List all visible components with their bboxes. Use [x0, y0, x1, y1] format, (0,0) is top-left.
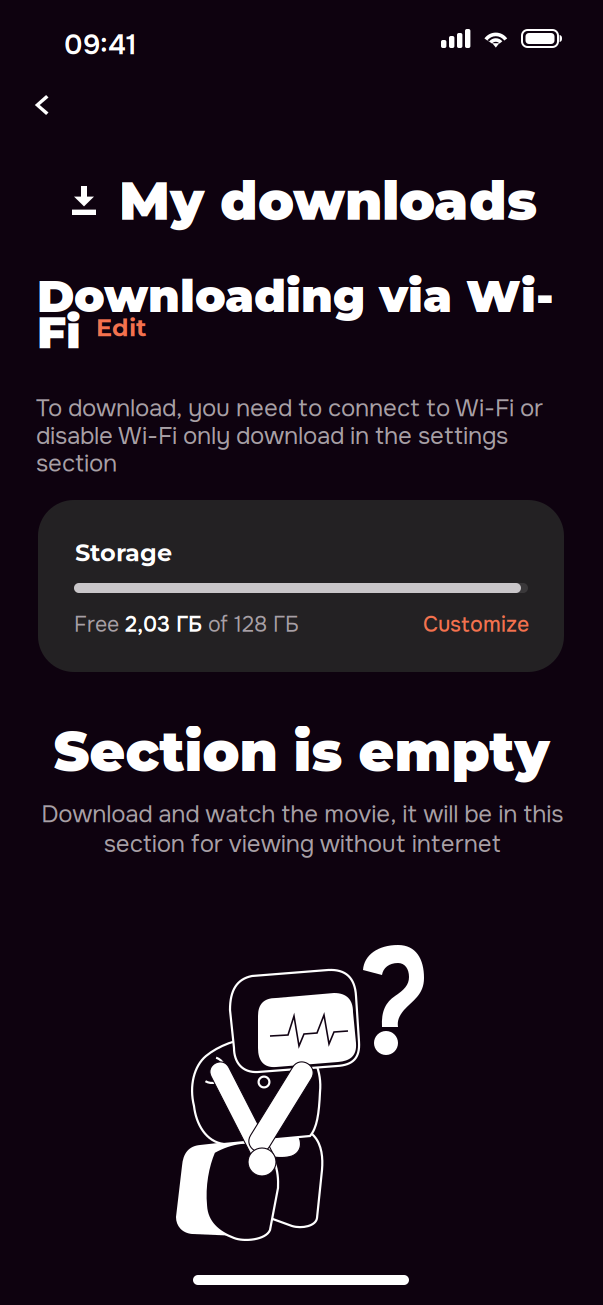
button[interactable]: Edit [89, 307, 153, 348]
staticText: Customize [423, 611, 529, 638]
staticText: Downloading via Wi-Fi [37, 268, 554, 359]
staticText: 2,03 ГБ [125, 611, 202, 638]
staticText: of 128 ГБ [202, 611, 299, 638]
staticText: My downloads [119, 168, 537, 233]
button[interactable]: Back [7, 72, 77, 138]
staticText: Download and watch the movie, it will be… [41, 799, 563, 859]
staticText: Section is empty [53, 718, 549, 785]
staticText: To download, you need to connect to Wi-F… [36, 393, 543, 479]
staticText: Free [74, 611, 125, 638]
staticText: 09:41 [64, 27, 137, 63]
staticText: Storage [75, 538, 172, 567]
staticText: Edit [96, 313, 146, 342]
button[interactable]: Customize [419, 605, 529, 644]
